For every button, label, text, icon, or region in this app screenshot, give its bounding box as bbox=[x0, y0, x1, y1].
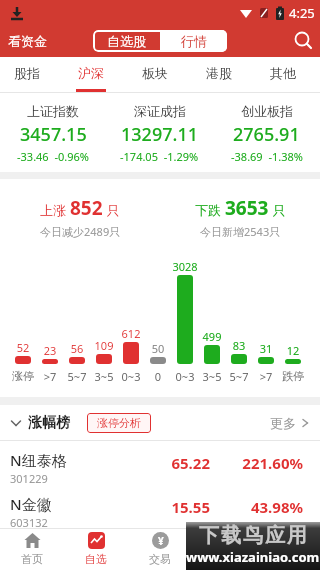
staticText: 下载鸟应用 bbox=[198, 523, 308, 548]
button[interactable]: 深证成指 bbox=[106, 93, 213, 164]
staticText: 23 bbox=[33, 343, 67, 358]
button[interactable]: 其他 bbox=[268, 57, 298, 92]
staticText: 3028 bbox=[168, 259, 202, 274]
staticText: 4:25 bbox=[289, 4, 315, 22]
staticText: 31 bbox=[249, 341, 283, 356]
staticText: 股指 bbox=[14, 65, 40, 81]
staticText: 13297.11 bbox=[121, 122, 198, 147]
staticText: 交易 bbox=[149, 552, 171, 566]
staticText: 涨停分析 bbox=[97, 416, 141, 430]
staticText: 其他 bbox=[270, 65, 296, 81]
staticText: 今日减少2489只 bbox=[40, 224, 121, 239]
staticText: 只 bbox=[269, 201, 286, 219]
staticText: 下跌 bbox=[195, 201, 225, 219]
staticText: 上涨 bbox=[40, 201, 70, 219]
staticText: 我的 bbox=[277, 552, 299, 566]
staticText: 跌停 bbox=[276, 369, 310, 383]
button[interactable]: 涨停分析 bbox=[87, 413, 151, 433]
staticText: 0~3 bbox=[114, 369, 148, 384]
staticText: 板块 bbox=[142, 65, 168, 81]
staticText: 65.22 bbox=[130, 453, 210, 473]
button[interactable]: 行情 bbox=[160, 30, 227, 52]
button[interactable]: ¥ bbox=[128, 529, 192, 570]
staticText: 50 bbox=[141, 341, 175, 356]
staticText: 852 bbox=[70, 195, 103, 221]
staticText: www.xiazainiao.com bbox=[186, 548, 320, 566]
staticText: -174.05 -1.29% bbox=[120, 149, 199, 164]
staticText: 自选 bbox=[85, 552, 107, 566]
staticText: N金徽 bbox=[10, 494, 52, 514]
staticText: 499 bbox=[195, 329, 229, 344]
staticText: -38.69 -1.38% bbox=[231, 149, 303, 164]
button[interactable]: 看资金 bbox=[8, 33, 47, 49]
staticText: 涨停 bbox=[6, 369, 40, 383]
button[interactable]: 自选股 bbox=[93, 30, 160, 52]
staticText: 612 bbox=[114, 326, 148, 341]
staticText: 行情 bbox=[213, 552, 235, 566]
staticText: 5~7 bbox=[222, 369, 256, 384]
staticText: 0~3 bbox=[168, 369, 202, 384]
staticText: 涨幅榜 bbox=[28, 414, 70, 432]
button[interactable]: N纽泰格 bbox=[0, 441, 320, 485]
staticText: 今日新增2543只 bbox=[200, 224, 281, 239]
staticText: 创业板指 bbox=[241, 103, 293, 119]
button[interactable]: 自选 bbox=[64, 529, 128, 570]
staticText: 3457.15 bbox=[20, 122, 87, 147]
staticText: 109 bbox=[87, 338, 121, 353]
staticText: 43.98% bbox=[210, 497, 303, 517]
staticText: 深证成指 bbox=[134, 103, 186, 119]
staticText: 603132 bbox=[10, 515, 48, 528]
button[interactable]: 创业板指 bbox=[213, 93, 320, 164]
button[interactable]: 股指 bbox=[12, 57, 42, 92]
staticText: ¥ bbox=[158, 534, 164, 548]
staticText: >7 bbox=[249, 369, 283, 384]
staticText: 52 bbox=[6, 340, 40, 355]
staticText: 首页 bbox=[21, 552, 43, 566]
staticText: 3~5 bbox=[87, 369, 121, 384]
staticText: 221.60% bbox=[210, 453, 303, 473]
staticText: 12 bbox=[276, 343, 310, 358]
staticText: 沪深 bbox=[78, 65, 104, 81]
staticText: 301229 bbox=[10, 471, 48, 485]
staticText: 3653 bbox=[225, 195, 269, 221]
staticText: 56 bbox=[60, 341, 94, 356]
staticText: 2765.91 bbox=[233, 122, 300, 147]
staticText: >7 bbox=[33, 369, 67, 384]
staticText: 上证指数 bbox=[27, 103, 79, 119]
staticText: 15.55 bbox=[130, 497, 210, 517]
staticText: 83 bbox=[222, 338, 256, 353]
button[interactable]: 我的 bbox=[256, 529, 320, 570]
staticText: 自选股 bbox=[107, 33, 146, 49]
staticText: -33.46 -0.96% bbox=[17, 149, 89, 164]
staticText: 3~5 bbox=[195, 369, 229, 384]
button[interactable]: 沪深 bbox=[76, 57, 106, 92]
staticText: N纽泰格 bbox=[10, 450, 67, 470]
staticText: 只 bbox=[103, 201, 120, 219]
staticText: 行情 bbox=[181, 33, 207, 49]
staticText: 更多 bbox=[270, 415, 296, 431]
button[interactable]: 港股 bbox=[204, 57, 234, 92]
button[interactable]: 板块 bbox=[140, 57, 170, 92]
staticText: 港股 bbox=[206, 65, 232, 81]
staticText: 5~7 bbox=[60, 369, 94, 384]
button[interactable]: N金徽 bbox=[0, 485, 320, 528]
button[interactable]: 更多 bbox=[270, 415, 310, 431]
staticText: 0 bbox=[141, 369, 175, 384]
button[interactable]: 首页 bbox=[0, 529, 64, 570]
button[interactable]: 上证指数 bbox=[0, 93, 106, 164]
button[interactable] bbox=[288, 25, 320, 57]
button[interactable]: 行情 bbox=[192, 529, 256, 570]
